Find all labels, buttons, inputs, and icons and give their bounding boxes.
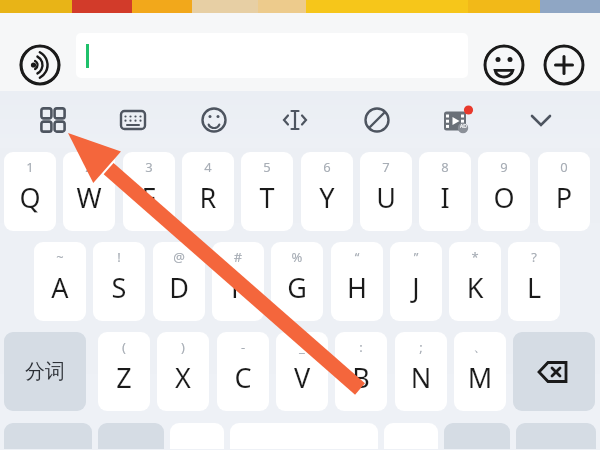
staticText: B	[335, 359, 387, 396]
button[interactable]: :	[335, 332, 387, 411]
staticText: ?	[508, 248, 560, 266]
staticText: “	[331, 248, 383, 266]
button[interactable]: 5	[241, 152, 293, 231]
staticText: R	[182, 179, 234, 216]
button[interactable]: ~	[34, 242, 86, 321]
button[interactable]: @	[153, 242, 205, 321]
button[interactable]: 、	[454, 332, 506, 411]
staticText: O	[478, 179, 530, 216]
button[interactable]: 4	[182, 152, 234, 231]
staticText: S	[93, 269, 145, 306]
staticText: V	[276, 359, 328, 396]
button[interactable]: (	[98, 332, 150, 411]
staticText: 5	[241, 158, 293, 176]
staticText: ~	[34, 248, 86, 266]
button[interactable]: ?	[508, 242, 560, 321]
staticText: J	[390, 269, 442, 306]
button[interactable]: Emoji	[192, 98, 236, 142]
staticText: P	[538, 179, 590, 216]
staticText: I	[419, 179, 471, 216]
button[interactable]: 3	[123, 152, 175, 231]
button[interactable]: 分词	[4, 332, 86, 411]
staticText: U	[360, 179, 412, 216]
staticText: 9	[478, 158, 530, 176]
staticText: @	[153, 248, 205, 266]
button[interactable]: Panel	[31, 98, 75, 142]
staticText: *	[449, 248, 501, 266]
staticText: 6	[301, 158, 353, 176]
button[interactable]: 0	[538, 152, 590, 231]
button[interactable]: Backspace	[513, 332, 595, 411]
staticText: T	[241, 179, 293, 216]
button[interactable]: ”	[390, 242, 442, 321]
staticText: ;	[395, 338, 447, 356]
staticText: Y	[301, 179, 353, 216]
staticText: #	[212, 248, 264, 266]
button[interactable]: )	[157, 332, 209, 411]
staticText: 4	[182, 158, 234, 176]
staticText: _	[276, 338, 328, 356]
staticText: A	[34, 269, 86, 306]
staticText: 0	[538, 158, 590, 176]
staticText: (	[98, 338, 150, 356]
button[interactable]: Collapse keyboard	[519, 98, 563, 142]
staticText: AD	[460, 123, 467, 130]
staticText: 7	[360, 158, 412, 176]
button[interactable]: !	[93, 242, 145, 321]
button[interactable]: “	[331, 242, 383, 321]
button[interactable]: Cursor control	[273, 98, 317, 142]
button[interactable]: Add	[543, 44, 585, 86]
staticText: L	[508, 269, 560, 306]
staticText: 2	[63, 158, 115, 176]
staticText: C	[217, 359, 269, 396]
staticText: Q	[4, 179, 56, 216]
staticText: 、	[454, 338, 506, 354]
button[interactable]	[516, 423, 596, 449]
staticText: X	[157, 359, 209, 396]
staticText: M	[454, 359, 506, 396]
button[interactable]	[444, 423, 510, 449]
button[interactable]: Voice input	[19, 44, 61, 86]
staticText: )	[157, 338, 209, 356]
button[interactable]: Keyboard layout	[111, 98, 155, 142]
button[interactable]: 1	[4, 152, 56, 231]
staticText: 1	[4, 158, 56, 176]
button[interactable]: 6	[301, 152, 353, 231]
staticText: Z	[98, 359, 150, 396]
button[interactable]: Ad video	[436, 98, 480, 142]
button[interactable]: ;	[395, 332, 447, 411]
button[interactable]: -	[217, 332, 269, 411]
staticText: 分词	[25, 359, 65, 384]
button[interactable]	[76, 33, 468, 78]
staticText: -	[217, 338, 269, 356]
staticText: :	[335, 338, 387, 356]
button[interactable]: *	[449, 242, 501, 321]
button[interactable]: _	[276, 332, 328, 411]
staticText: W	[63, 179, 115, 216]
staticText: F	[212, 269, 264, 306]
staticText: 3	[123, 158, 175, 176]
button[interactable]: 2	[63, 152, 115, 231]
staticText: D	[153, 269, 205, 306]
staticText: K	[449, 269, 501, 306]
button[interactable]: #	[212, 242, 264, 321]
button[interactable]	[98, 423, 164, 449]
button[interactable]: 9	[478, 152, 530, 231]
button[interactable]: 8	[419, 152, 471, 231]
staticText: %	[271, 248, 323, 266]
staticText: ”	[390, 248, 442, 266]
button[interactable]: Emoji	[483, 44, 525, 86]
staticText: E	[123, 179, 175, 216]
staticText: G	[271, 269, 323, 306]
button[interactable]: 7	[360, 152, 412, 231]
staticText: N	[395, 359, 447, 396]
staticText: H	[331, 269, 383, 306]
staticText: 8	[419, 158, 471, 176]
button[interactable]: Attachment	[355, 98, 399, 142]
staticText: !	[93, 248, 145, 266]
button[interactable]: %	[271, 242, 323, 321]
